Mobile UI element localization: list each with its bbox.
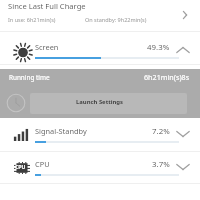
staticText: On standby: 9h22min(s) bbox=[85, 16, 147, 23]
staticText: Launch Settings bbox=[76, 98, 124, 106]
staticText: Since Last Full Charge bbox=[8, 1, 86, 11]
staticText: Screen bbox=[35, 42, 59, 52]
staticText: 49.3% bbox=[147, 42, 170, 53]
staticText: Running time bbox=[9, 73, 50, 82]
staticText: Signal-Standby bbox=[35, 126, 87, 136]
staticText: CPU bbox=[15, 163, 26, 170]
staticText: 6h21min(s)8s bbox=[144, 72, 190, 82]
button[interactable]: Screen bbox=[0, 41, 200, 69]
staticText: CPU bbox=[35, 159, 50, 169]
other: Refresh bbox=[6, 93, 26, 113]
staticText: In use: 6h21min(s) bbox=[8, 16, 56, 23]
button[interactable] bbox=[30, 93, 187, 114]
staticText: 7.2% bbox=[152, 126, 170, 137]
button[interactable]: CPU bbox=[0, 158, 200, 186]
staticText: 3.7% bbox=[152, 159, 170, 170]
button[interactable]: Since Last Full Charge bbox=[0, 0, 200, 31]
button[interactable]: Signal-Standby bbox=[0, 125, 200, 153]
other: Details bbox=[179, 9, 191, 21]
